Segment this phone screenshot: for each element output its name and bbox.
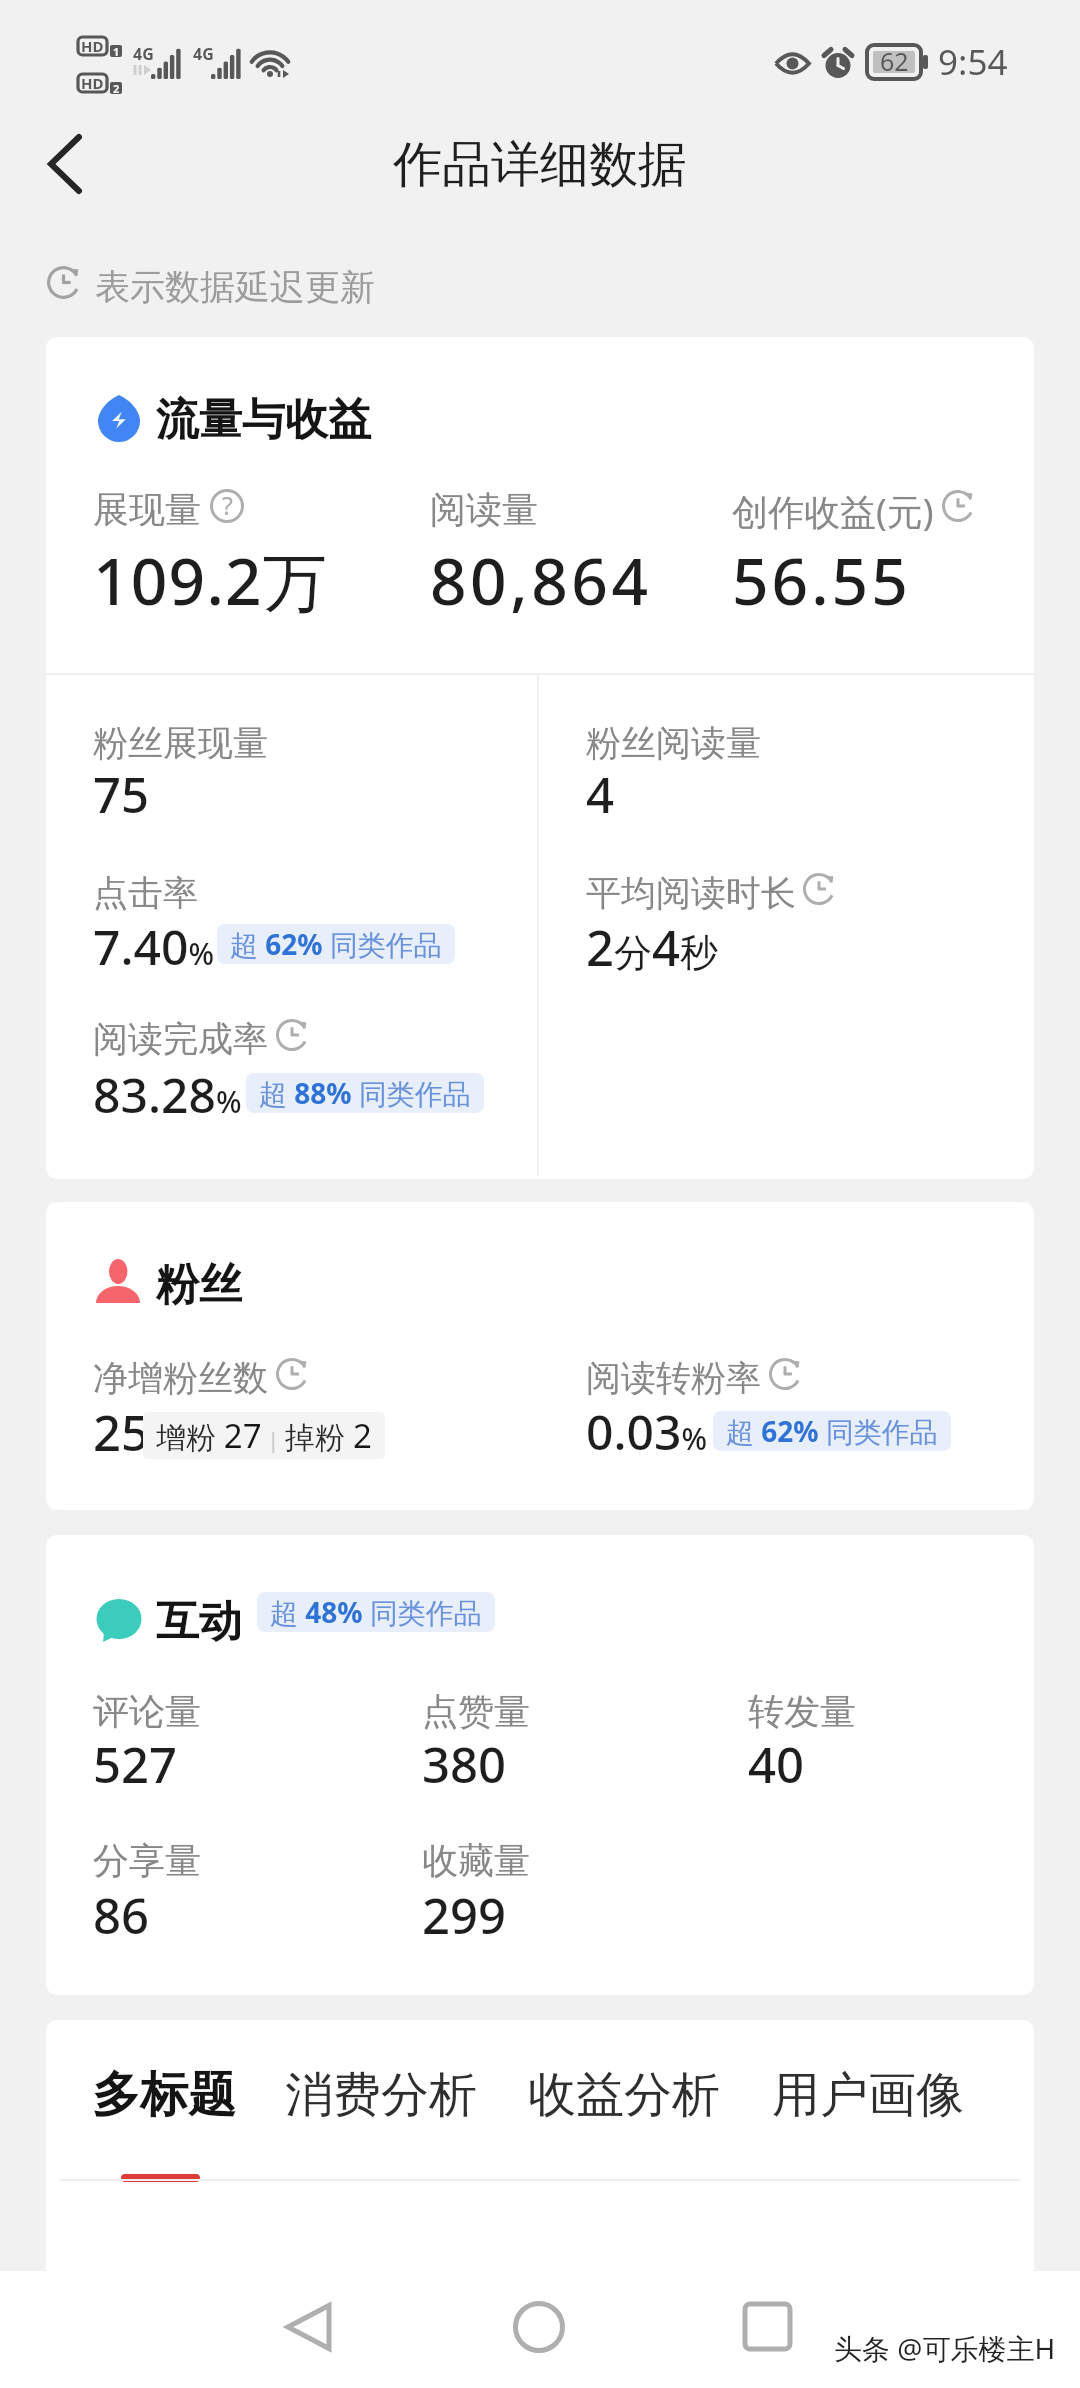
staticText: 80,864 (430, 537, 652, 624)
staticText: 86 (93, 1882, 150, 1949)
staticText: 75 (93, 761, 150, 828)
staticText: 7.40% (93, 914, 214, 979)
button[interactable]: Back (15, 114, 115, 214)
button[interactable]: 阅读转粉率 0.03% (546, 1342, 996, 1472)
staticText: 评论量 (93, 1689, 201, 1734)
button[interactable]: 平均阅读时长 2分4秒 (546, 857, 986, 997)
staticText: 超 62% 同类作品 (726, 1412, 938, 1450)
staticText: 1 (113, 45, 120, 56)
staticText: 超 48% 同类作品 (270, 1593, 482, 1631)
button[interactable]: 点赞量 380 (415, 1680, 735, 1805)
button[interactable]: 收藏量 299 (415, 1829, 735, 1954)
staticText: 2 (113, 82, 120, 93)
staticText: 9:54 (938, 38, 1008, 86)
staticText: 流量与收益 (156, 393, 371, 447)
staticText: 25 (93, 1399, 150, 1466)
button[interactable]: 点击率 7.40% (86, 857, 526, 997)
staticText: 83.28% (93, 1062, 242, 1127)
button[interactable]: Recents (707, 2268, 827, 2385)
staticText: HD (81, 73, 104, 91)
staticText: 收藏量 (422, 1838, 530, 1883)
button[interactable]: 阅读完成率 83.28% (86, 1003, 526, 1143)
staticText: 超 62% 同类作品 (230, 925, 442, 963)
staticText: 粉丝阅读量 (586, 721, 761, 765)
staticText: 展现量 (93, 487, 201, 532)
staticText: 点击率 (93, 871, 198, 915)
button[interactable]: Home (479, 2268, 599, 2385)
staticText: 4 (586, 761, 615, 828)
staticText: 消费分析 (285, 2065, 477, 2125)
button[interactable]: 创作收益 56.55元 (725, 477, 1025, 622)
staticText: 多标题 (92, 2065, 236, 2125)
staticText: 380 (422, 1731, 507, 1798)
staticText: 互动 (156, 1595, 242, 1649)
button[interactable]: 净增粉丝数 25 (86, 1342, 536, 1472)
staticText: 阅读量 (430, 487, 538, 532)
button[interactable]: 评论量 527 (86, 1680, 406, 1805)
staticText: 4G (133, 43, 154, 65)
button[interactable]: 粉丝展现量 75 (86, 707, 526, 837)
staticText: 527 (93, 1731, 178, 1798)
staticText: 2分4秒 (586, 914, 719, 981)
button[interactable]: 用户画像 (760, 2043, 976, 2147)
staticText: 增粉 27 | 掉粉 2 (156, 1413, 372, 1458)
staticText: 点赞量 (422, 1689, 530, 1734)
staticText: 净增粉丝数 (93, 1356, 268, 1400)
staticText: 粉丝 (156, 1258, 242, 1312)
staticText: 作品详细数据 (393, 134, 687, 196)
staticText: 创作收益(元) (732, 487, 934, 536)
button[interactable]: Back (248, 2268, 368, 2385)
staticText: 粉丝展现量 (93, 721, 268, 765)
staticText: 阅读完成率 (93, 1017, 268, 1061)
button[interactable]: 消费分析 (273, 2043, 489, 2147)
staticText: 56.55 (732, 537, 911, 624)
staticText: 40 (748, 1731, 805, 1798)
button[interactable]: 阅读量 80,864 (423, 477, 713, 622)
staticText: 超 88% 同类作品 (259, 1074, 471, 1112)
staticText: 分享量 (93, 1838, 201, 1883)
staticText: 0.03% (586, 1399, 707, 1464)
staticText: 62 (880, 44, 909, 78)
button[interactable]: 转发量 40 (741, 1680, 1031, 1805)
staticText: 用户画像 (772, 2065, 964, 2125)
staticText: 头条 @可乐楼主H (834, 2329, 1056, 2367)
staticText: 平均阅读时长 (586, 871, 796, 915)
staticText: 4G (193, 43, 214, 65)
staticText: 299 (422, 1882, 507, 1949)
staticText: 109.2万 (93, 537, 329, 624)
button[interactable]: 多标题 (80, 2043, 248, 2147)
button[interactable]: 收益分析 (516, 2043, 732, 2147)
button[interactable]: 展现量 109.2万 (86, 477, 386, 622)
staticText: 转发量 (748, 1689, 856, 1734)
staticText: HD (81, 36, 104, 54)
button[interactable]: 分享量 86 (86, 1829, 406, 1954)
staticText: 收益分析 (528, 2065, 720, 2125)
button[interactable]: 粉丝阅读量 4 (546, 707, 986, 837)
staticText: ? (222, 488, 233, 522)
staticText: 表示数据延迟更新 (95, 265, 375, 309)
staticText: 阅读转粉率 (586, 1356, 761, 1400)
